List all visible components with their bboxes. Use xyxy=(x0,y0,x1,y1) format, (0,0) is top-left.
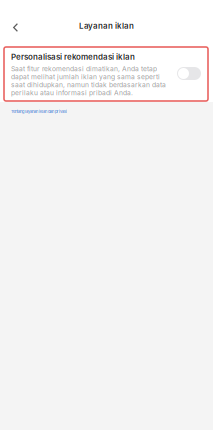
button[interactable]: Back xyxy=(0,0,30,41)
staticText: Personalisasi rekomendasi iklan xyxy=(11,52,135,62)
staticText: Tentang layanan iklan dan privasi xyxy=(11,109,67,114)
staticText: Layanan iklan xyxy=(79,21,134,31)
button[interactable]: Tentang layanan iklan dan privasi xyxy=(0,102,73,119)
staticText: Saat fitur rekomendasi dimatikan, Anda t… xyxy=(11,65,166,97)
button[interactable]: Personalisasi rekomendasi iklan xyxy=(173,52,213,84)
